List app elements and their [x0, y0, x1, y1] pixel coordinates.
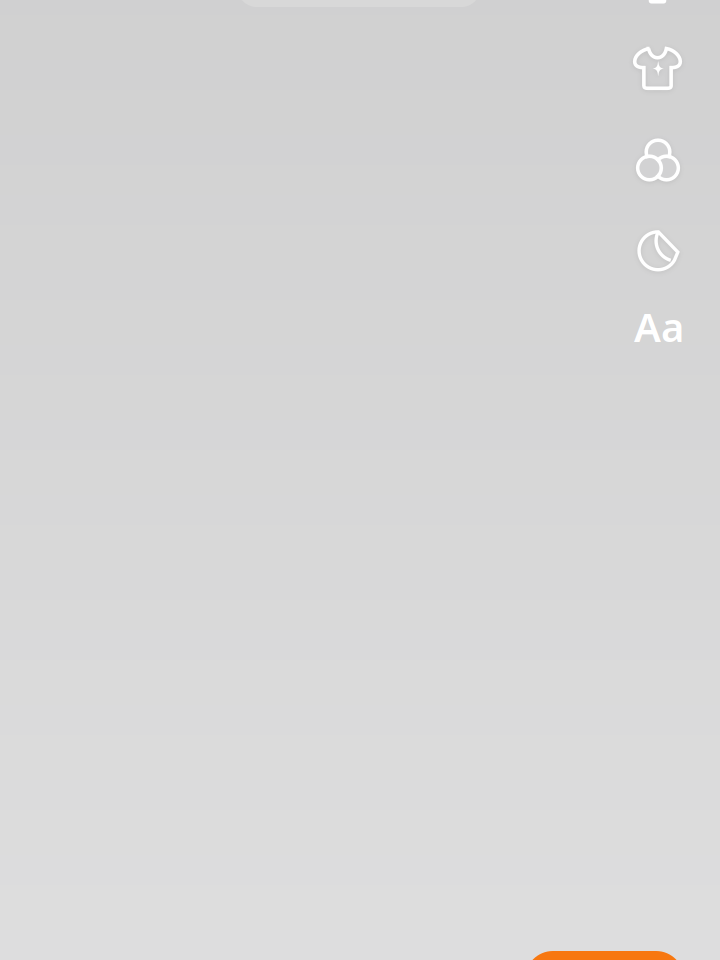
button[interactable]: Text — [623, 299, 695, 353]
staticText: Aa — [634, 300, 684, 353]
button[interactable]: Stickers — [627, 220, 689, 282]
button[interactable]: Outfit — [626, 37, 688, 99]
button[interactable]: Colour — [627, 129, 689, 191]
button[interactable]: Generate — [525, 951, 684, 960]
button[interactable]: Backdrop — [649, 0, 666, 3]
